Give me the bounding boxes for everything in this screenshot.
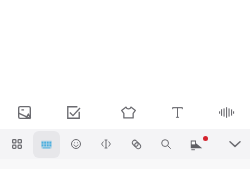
button[interactable]: Emoji: [62, 130, 90, 158]
button[interactable]: Search: [152, 130, 180, 158]
button[interactable]: Stickers: [182, 130, 210, 158]
button[interactable]: Apps: [3, 130, 31, 158]
button[interactable]: Text formatting: [153, 88, 201, 136]
button[interactable]: Stickers: [104, 88, 152, 136]
button[interactable]: Keyboard: [32, 130, 60, 158]
button[interactable]: Text cursor control: [92, 130, 120, 158]
button[interactable]: Checklist: [49, 88, 97, 136]
button[interactable]: Clipboard link: [122, 130, 150, 158]
button[interactable]: Image: [0, 88, 48, 136]
button[interactable]: Collapse keyboard: [221, 130, 249, 158]
button[interactable]: Voice input: [202, 88, 250, 136]
